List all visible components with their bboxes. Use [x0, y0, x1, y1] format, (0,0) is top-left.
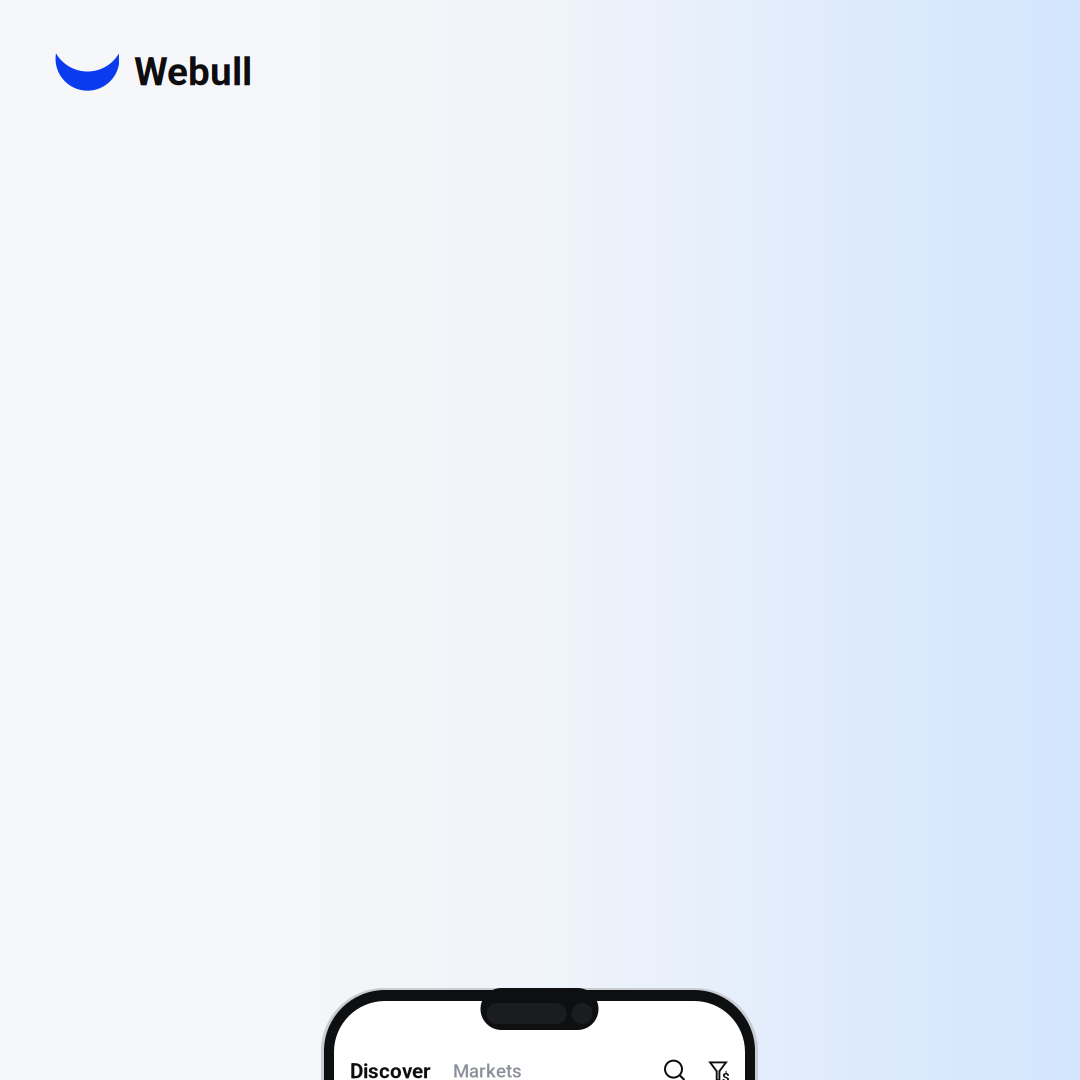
- staticText: Webull: [134, 49, 252, 95]
- button[interactable]: Filter: [709, 1061, 733, 1080]
- staticText: Markets: [453, 1060, 522, 1080]
- button[interactable]: Markets: [453, 1060, 522, 1080]
- staticText: $: [722, 1070, 730, 1080]
- button[interactable]: Discover: [350, 1059, 431, 1080]
- staticText: Discover: [350, 1059, 431, 1080]
- button[interactable]: Search: [665, 1061, 686, 1080]
